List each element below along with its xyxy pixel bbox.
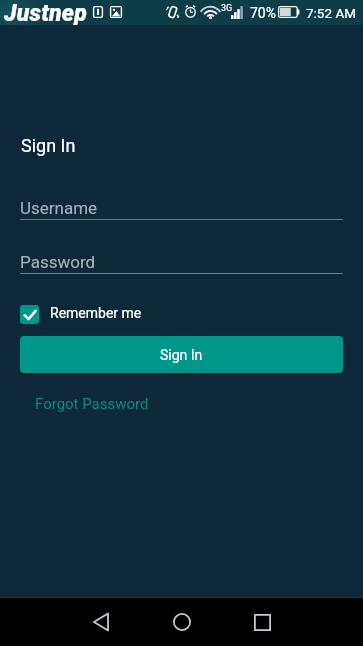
button[interactable]: Forgot Password	[35, 395, 149, 413]
staticText: Password	[20, 252, 96, 272]
button[interactable]: Sign In	[20, 336, 343, 373]
staticText: Sign In	[160, 347, 203, 363]
staticText: Username	[20, 198, 98, 218]
staticText: 3G	[221, 3, 233, 14]
staticText: Remember me	[50, 305, 142, 321]
staticText: Sign In	[21, 135, 76, 156]
button[interactable]: Remember me	[20, 305, 142, 324]
staticText: Justnep	[4, 0, 87, 25]
staticText: 7:52 AM	[306, 5, 356, 21]
button[interactable]: Back	[77, 598, 125, 646]
staticText: 70%	[250, 5, 276, 21]
button[interactable]: Recent apps	[238, 598, 286, 646]
button[interactable]: Home	[158, 598, 206, 646]
